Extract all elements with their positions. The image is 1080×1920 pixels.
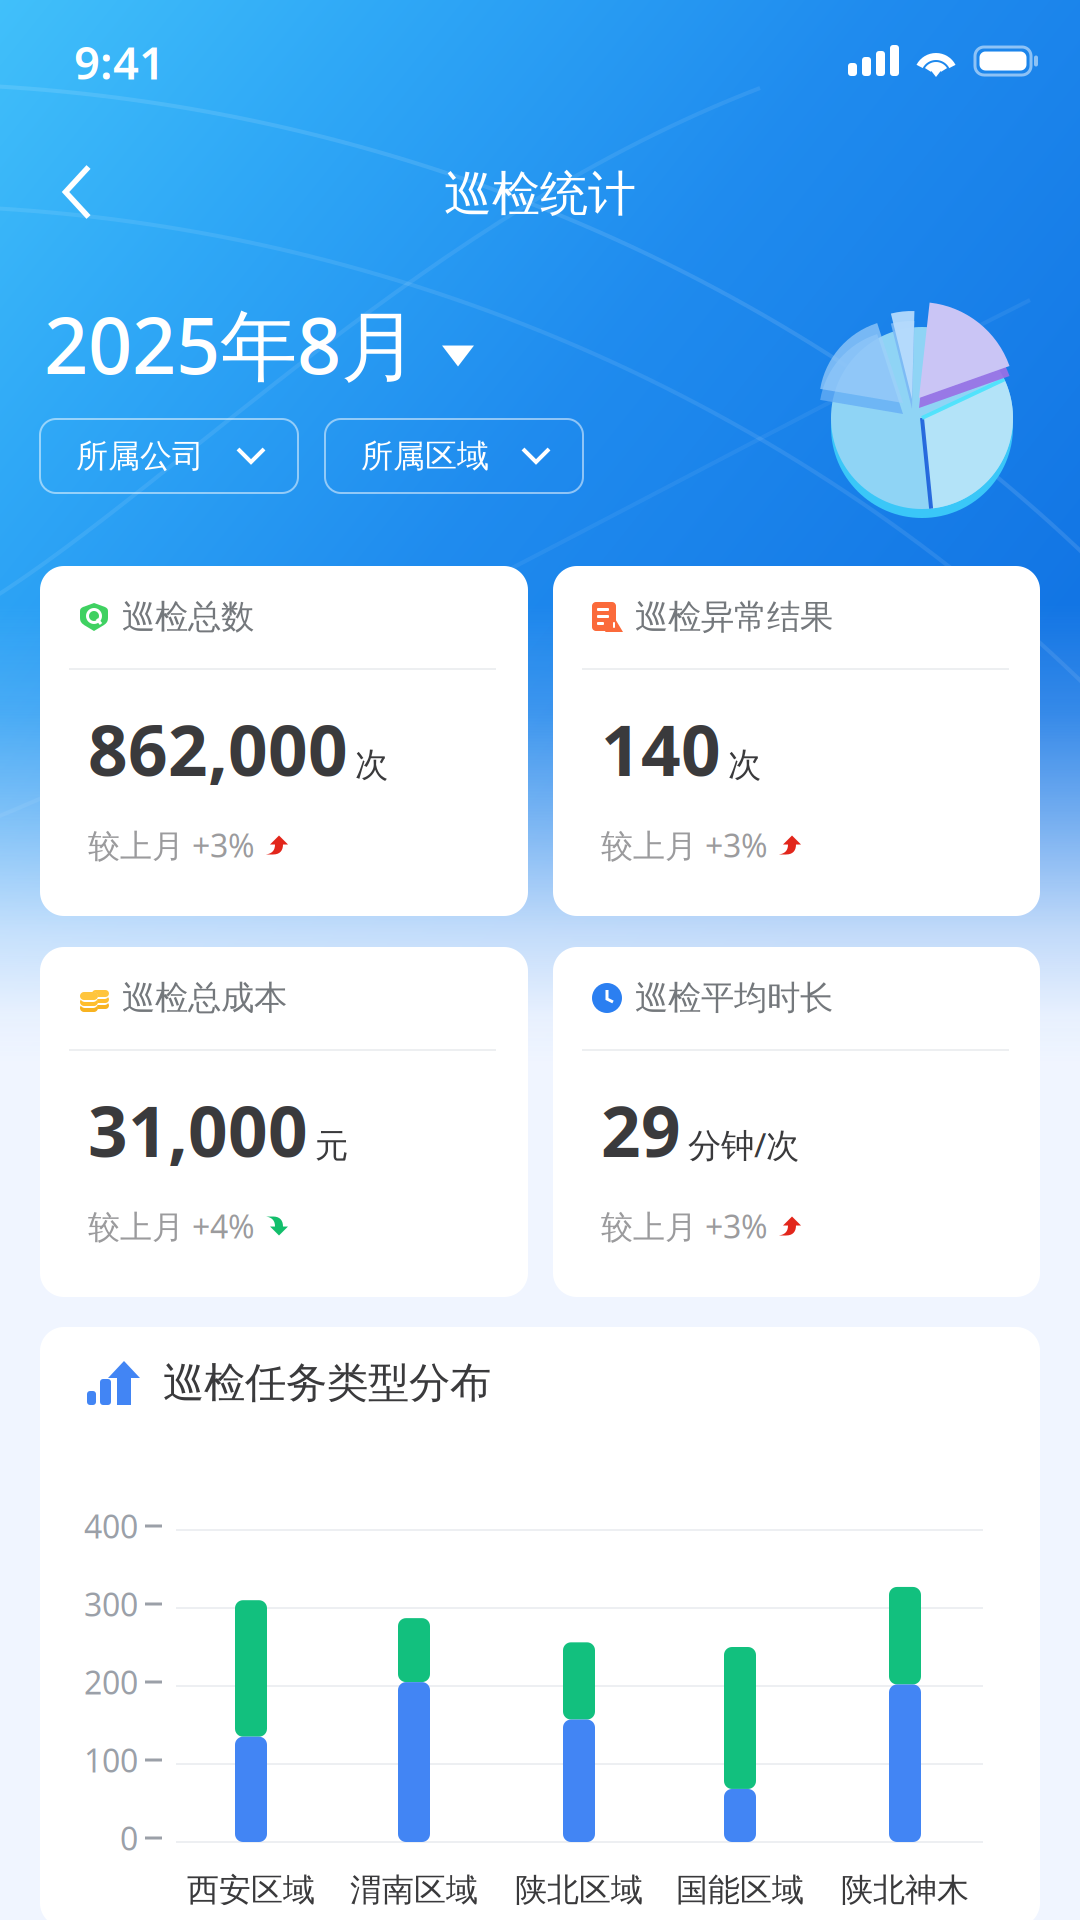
button[interactable]: 2025年8月	[44, 293, 474, 395]
staticText: 次	[728, 744, 761, 785]
staticText: 巡检总成本	[122, 977, 287, 1018]
staticText: 国能区域	[676, 1870, 804, 1910]
staticText: 陕北区域	[515, 1870, 643, 1910]
staticText: 巡检总数	[122, 596, 254, 637]
staticText: 2025年8月	[44, 293, 418, 395]
staticText: 200	[84, 1661, 138, 1703]
staticText: 300	[84, 1583, 138, 1625]
staticText: 分钟/次	[688, 1122, 799, 1167]
staticText: 渭南区域	[350, 1870, 478, 1910]
button[interactable]: 所属区域	[325, 419, 583, 493]
staticText: 陕北神木	[841, 1870, 969, 1910]
staticText: 862,000	[88, 703, 348, 795]
staticText: 较上月 +3%	[601, 1205, 768, 1247]
staticText: 巡检任务类型分布	[163, 1358, 491, 1408]
staticText: 西安区域	[187, 1870, 315, 1910]
staticText: 29	[601, 1084, 681, 1176]
staticText: 次	[355, 744, 388, 785]
button[interactable]: Back	[29, 144, 125, 240]
staticText: 较上月 +3%	[88, 824, 255, 866]
staticText: 100	[84, 1739, 138, 1781]
staticText: 9:41	[74, 32, 165, 92]
staticText: 140	[601, 703, 721, 795]
staticText: 元	[315, 1125, 348, 1166]
button[interactable]: 所属公司	[40, 419, 298, 493]
staticText: 所属区域	[361, 436, 489, 476]
staticText: 巡检异常结果	[635, 596, 833, 637]
staticText: 较上月 +3%	[601, 824, 768, 866]
staticText: 31,000	[88, 1084, 308, 1176]
staticText: 较上月 +4%	[88, 1205, 255, 1247]
staticText: 0	[120, 1817, 138, 1859]
staticText: 巡检平均时长	[635, 977, 833, 1018]
staticText: 400	[84, 1505, 138, 1547]
staticText: 巡检统计	[444, 164, 636, 223]
staticText: 所属公司	[76, 436, 204, 476]
